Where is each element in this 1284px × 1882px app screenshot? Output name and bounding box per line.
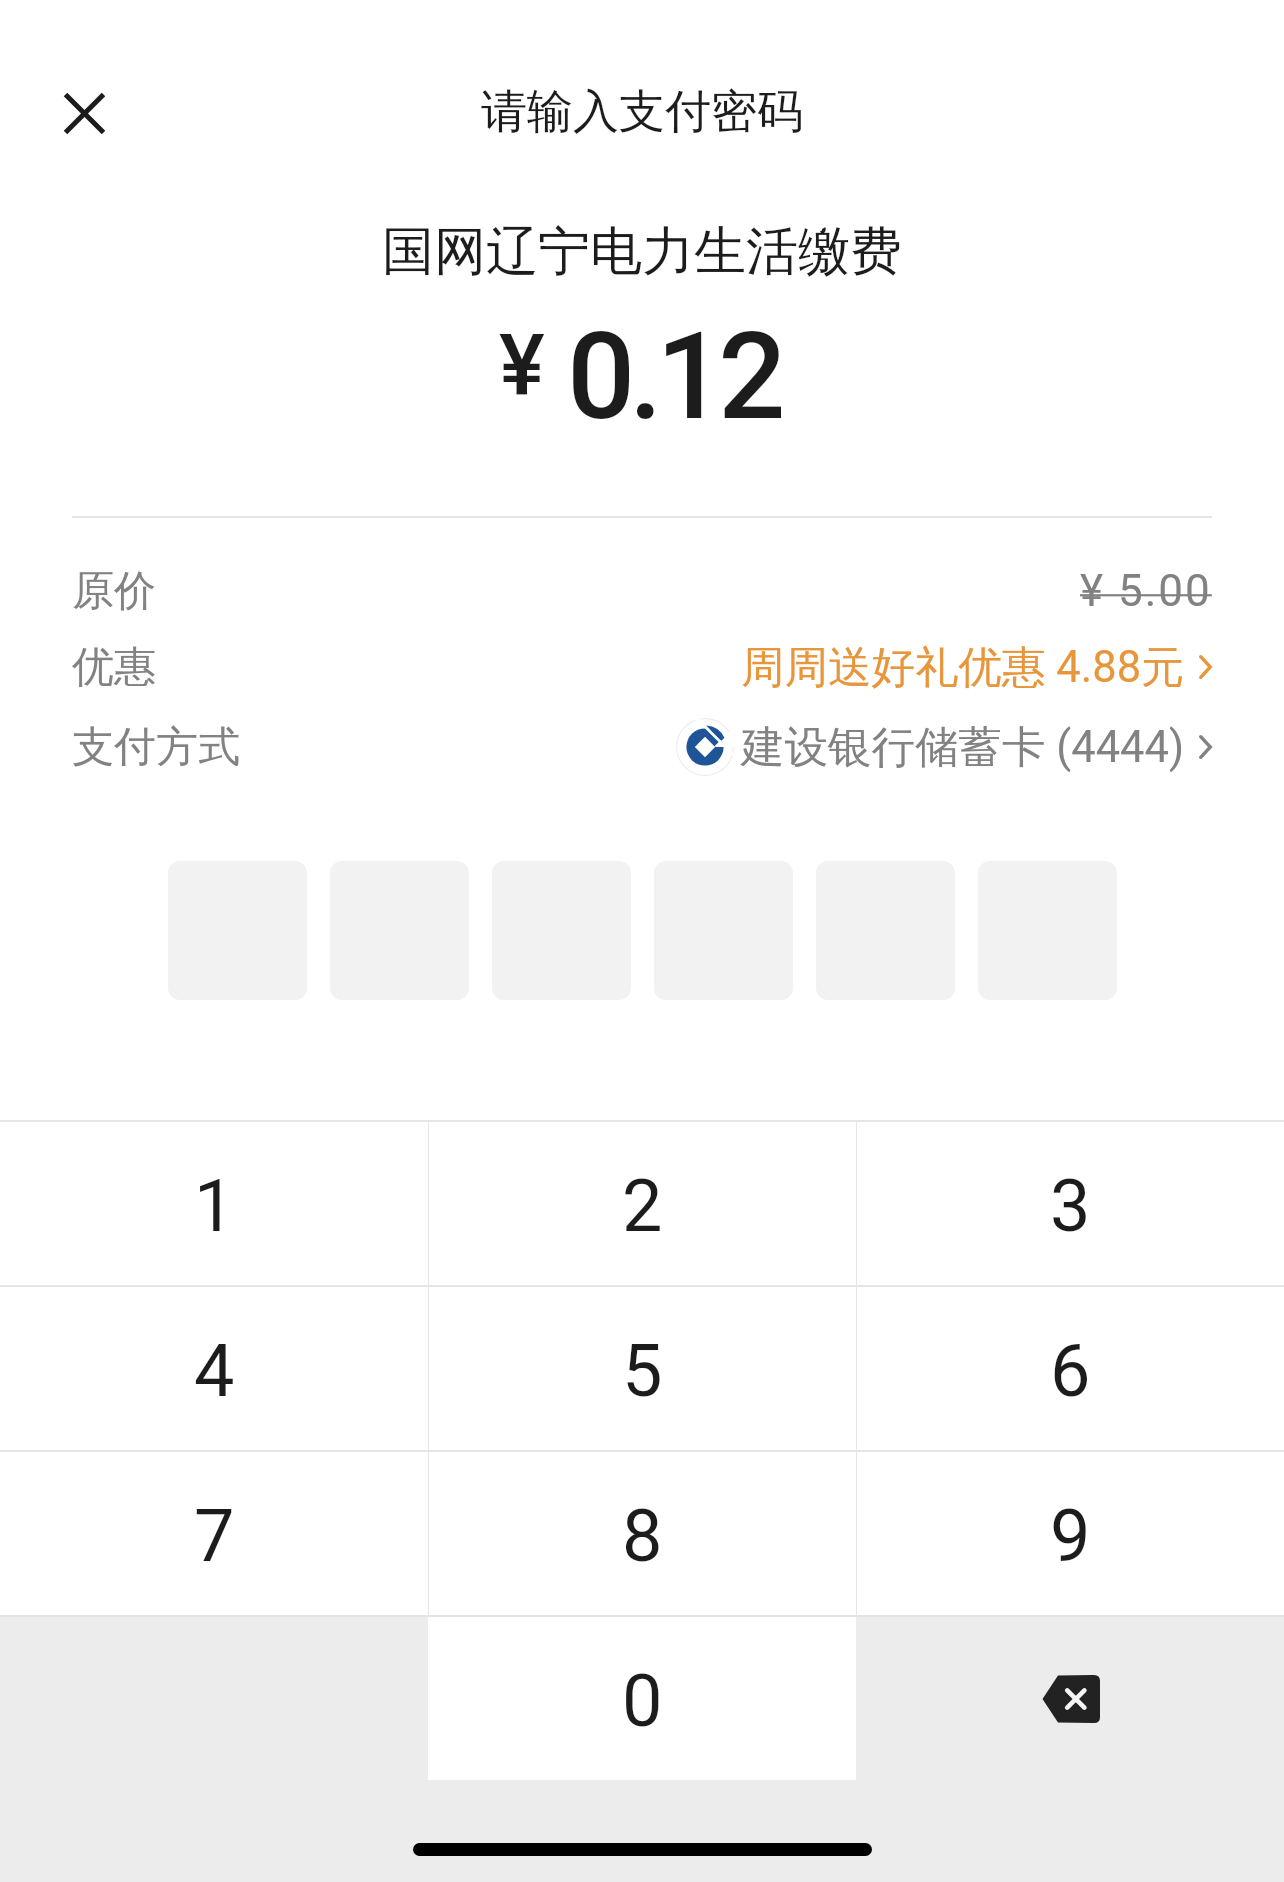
staticText: 5 <box>622 1329 663 1413</box>
staticText: ¥ 5.00 <box>1080 565 1212 617</box>
button[interactable]: 支付方式 <box>0 702 1284 792</box>
button[interactable]: 1 <box>0 1122 428 1285</box>
staticText: 0.12 <box>567 307 781 427</box>
button[interactable]: 4 <box>0 1287 428 1450</box>
staticText: 周周送好礼优惠 4.88元 <box>741 640 1185 695</box>
button[interactable]: 8 <box>428 1452 856 1615</box>
staticText: 6 <box>1050 1329 1091 1413</box>
staticText: 1 <box>194 1164 235 1248</box>
staticText: 7 <box>194 1494 235 1578</box>
button[interactable]: Close <box>40 69 128 157</box>
button[interactable]: 6 <box>856 1287 1284 1450</box>
staticText: 2 <box>622 1164 663 1248</box>
button[interactable]: 2 <box>428 1122 856 1285</box>
staticText: ¥ <box>499 315 545 416</box>
staticText: 9 <box>1050 1494 1091 1578</box>
staticText: 8 <box>622 1494 663 1578</box>
staticText: 国网辽宁电力生活缴费 <box>382 219 902 285</box>
staticText: 原价 <box>72 565 156 618</box>
button[interactable]: 7 <box>0 1452 428 1615</box>
button[interactable]: Delete <box>856 1617 1284 1780</box>
staticText: 3 <box>1050 1164 1091 1248</box>
staticText: 优惠 <box>72 641 156 694</box>
button[interactable]: 5 <box>428 1287 856 1450</box>
button[interactable]: 0 <box>428 1617 856 1780</box>
button[interactable]: 3 <box>856 1122 1284 1285</box>
staticText: 支付方式 <box>72 721 240 774</box>
button[interactable]: 优惠 <box>0 622 1284 712</box>
staticText: 4 <box>194 1329 235 1413</box>
staticText: 建设银行储蓄卡 (4444) <box>741 720 1185 775</box>
staticText: 请输入支付密码 <box>481 83 803 141</box>
button[interactable]: 9 <box>856 1452 1284 1615</box>
staticText: 0 <box>622 1659 663 1743</box>
